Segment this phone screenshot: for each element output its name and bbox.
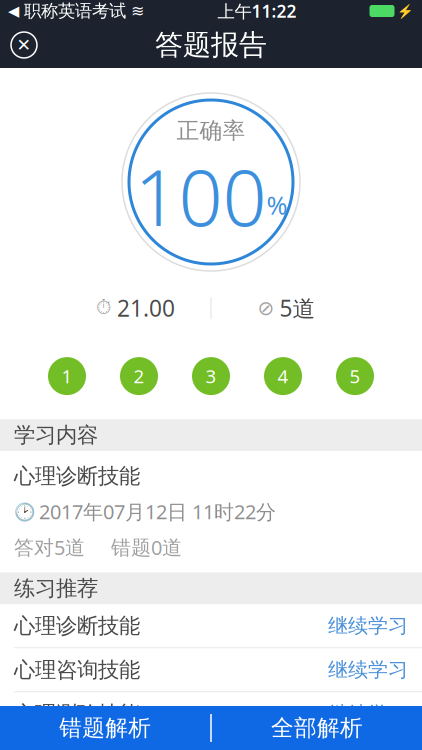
staticText: ⊘: [257, 297, 274, 319]
staticText: 100: [134, 145, 266, 247]
staticText: 心理测验技能: [14, 701, 140, 727]
staticText: 错题解析: [59, 714, 151, 742]
staticText: 1: [61, 364, 72, 388]
button[interactable]: 全部解析: [212, 706, 422, 750]
button[interactable]: 4: [247, 351, 319, 401]
button[interactable]: 心理咨询技能: [0, 648, 422, 691]
button[interactable]: 3: [175, 351, 247, 401]
button[interactable]: 心理测验技能: [0, 692, 422, 735]
staticText: ◀: [8, 3, 19, 19]
staticText: 🕑: [14, 502, 36, 521]
staticText: 21.00: [117, 293, 175, 323]
staticText: 心理诊断技能: [14, 463, 140, 489]
staticText: 答题报告: [155, 28, 267, 62]
staticText: ⚡: [397, 3, 414, 19]
button[interactable]: 心理诊断技能: [0, 604, 422, 647]
staticText: 3: [205, 364, 216, 388]
staticText: 2: [133, 364, 144, 388]
button[interactable]: 1: [31, 351, 103, 401]
staticText: 错题0道: [111, 534, 182, 560]
staticText: ⏱: [96, 298, 112, 318]
button[interactable]: 2: [103, 351, 175, 401]
staticText: 上午11:22: [217, 0, 296, 22]
staticText: 心理诊断技能: [14, 613, 140, 639]
staticText: 2017年07月12日 11时22分: [39, 498, 276, 525]
staticText: 全部解析: [271, 714, 363, 742]
button[interactable]: 5: [319, 351, 391, 401]
staticText: 学习内容: [14, 422, 98, 448]
button[interactable]: 关闭: [2, 23, 46, 67]
staticText: %: [266, 188, 287, 222]
staticText: 继续学习: [328, 658, 408, 682]
staticText: ✕: [16, 35, 31, 55]
staticText: 5道: [279, 293, 315, 323]
staticText: 练习推荐: [14, 575, 98, 601]
staticText: ≋: [131, 2, 144, 20]
staticText: 心理咨询技能: [14, 657, 140, 683]
staticText: 5: [349, 364, 360, 388]
staticText: 正确率: [176, 117, 245, 144]
staticText: 继续学习: [328, 702, 408, 726]
staticText: 继续学习: [328, 614, 408, 638]
staticText: 4: [277, 364, 288, 388]
staticText: 答对5道: [14, 534, 85, 560]
staticText: 职称英语考试: [24, 0, 126, 22]
button[interactable]: 错题解析: [0, 706, 210, 750]
